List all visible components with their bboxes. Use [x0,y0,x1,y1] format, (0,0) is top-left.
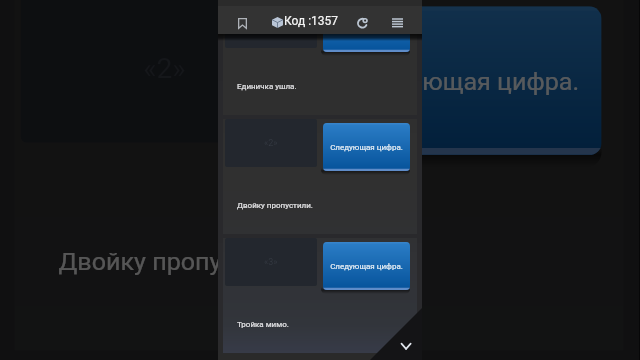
staticText: Двойку пропустили. [58,248,297,276]
button[interactable]: Scroll to bottom [368,306,422,360]
button[interactable]: Следующая цифра. [323,242,410,290]
button[interactable]: Следующая цифра. [323,123,410,171]
staticText: «3» [264,257,278,268]
staticText: Единичка ушла. [237,82,297,91]
staticText: Двойку пропустили. [237,201,313,210]
staticText: Следующая цифра. [330,143,403,152]
staticText: Следующая цифра. [330,24,403,33]
button[interactable]: «2» [21,0,310,143]
staticText: Следующая цифра. [330,262,403,271]
button[interactable]: Следующая цифра. [328,6,602,155]
staticText: Код :1357 [284,14,339,28]
staticText: «2» [264,138,278,149]
staticText: «1» [264,19,278,30]
button[interactable]: Menu [392,18,403,28]
button[interactable]: «1» [225,0,317,48]
button[interactable]: Следующая цифра. [323,4,410,52]
button[interactable]: Bookmark [238,18,247,29]
button[interactable]: Refresh [356,16,369,29]
staticText: Тройка мимо. [237,320,289,329]
staticText: Следующая цифра. [350,68,580,96]
